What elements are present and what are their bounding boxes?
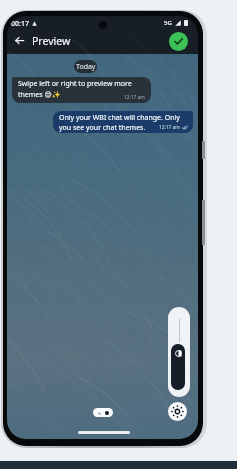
staticText: 00:17 [11,19,29,27]
button[interactable]: Back [10,31,29,50]
button[interactable]: Brightness [168,402,187,421]
staticText: Preview [32,34,71,48]
button[interactable]: Dim level [168,307,190,397]
staticText: Today [76,62,96,72]
staticText: 12:17 am [124,94,145,101]
staticText: Only your WBI chat will change. Only you… [59,113,187,133]
button[interactable]: Apply theme [169,32,188,51]
staticText: 12:17 am [159,124,180,131]
button[interactable]: Page indicator [93,408,113,417]
staticText: Swipe left or right to preview more them… [18,79,138,99]
staticText: 5G [164,19,172,27]
